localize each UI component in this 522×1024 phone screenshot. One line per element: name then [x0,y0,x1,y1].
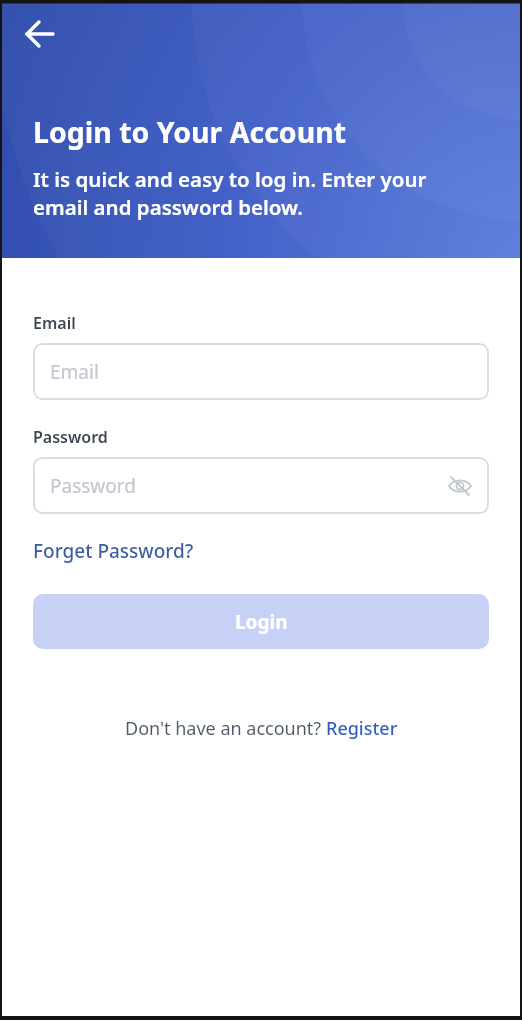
staticText: Password [33,426,108,448]
button[interactable]: Email [33,343,489,400]
button[interactable] [18,12,62,56]
button[interactable]: Login [33,594,489,649]
staticText: It is quick and easy to log in. Enter yo… [33,165,427,221]
staticText: Login to Your Account [33,113,347,152]
button[interactable]: Register [326,716,398,741]
staticText: Email [50,359,99,385]
button[interactable]: Forget Password? [33,538,194,564]
button[interactable]: Password [33,457,489,514]
staticText: Password [50,473,136,499]
staticText: Don't have an account? [125,716,326,741]
staticText: Email [33,312,76,334]
button[interactable] [447,473,473,499]
staticText: Login [235,609,288,635]
